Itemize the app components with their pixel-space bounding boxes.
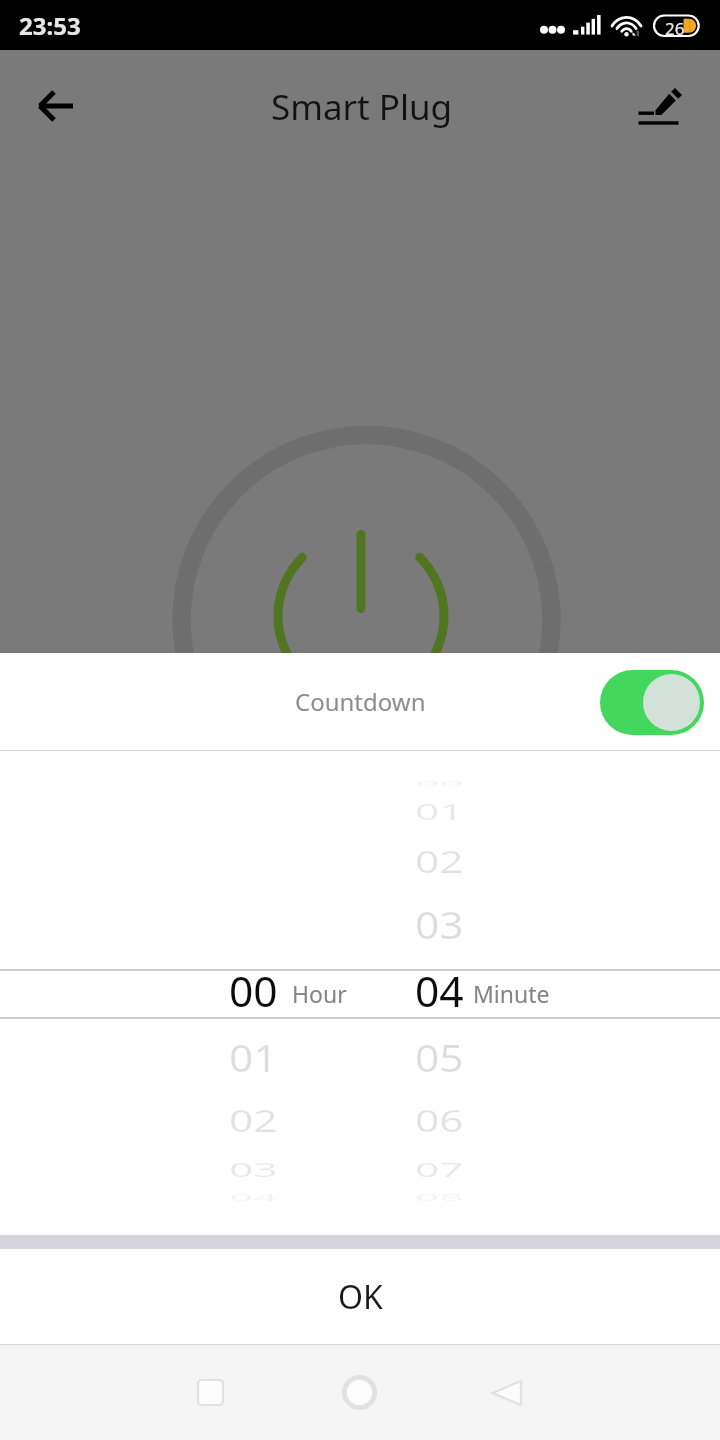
staticText: 02 bbox=[229, 1099, 278, 1141]
button[interactable]: Home bbox=[341, 1374, 378, 1411]
staticText: 06 bbox=[415, 1099, 464, 1141]
staticText: 02 bbox=[415, 841, 464, 883]
staticText: 04 bbox=[415, 962, 464, 1020]
staticText: Hour bbox=[292, 978, 347, 1009]
button[interactable]: Edit bbox=[621, 67, 701, 147]
staticText: 03 bbox=[229, 1155, 278, 1183]
staticText: 01 bbox=[415, 798, 464, 826]
staticText: 05 bbox=[415, 1030, 464, 1084]
staticText: 00 bbox=[229, 962, 278, 1020]
button[interactable]: Recents bbox=[192, 1374, 229, 1411]
staticText: 00 bbox=[415, 778, 464, 788]
staticText: 01 bbox=[229, 1030, 278, 1084]
staticText: 07 bbox=[415, 1155, 464, 1183]
staticText: OK bbox=[338, 1275, 383, 1319]
button[interactable]: Countdown bbox=[0, 653, 720, 750]
staticText: Minute bbox=[473, 978, 550, 1009]
button[interactable]: Back bbox=[16, 66, 96, 146]
button[interactable]: Back bbox=[488, 1374, 525, 1411]
staticText: 04 bbox=[229, 1192, 278, 1203]
button[interactable]: OK bbox=[0, 1249, 720, 1344]
staticText: Countdown bbox=[295, 685, 426, 718]
staticText: 08 bbox=[415, 1192, 464, 1203]
button[interactable]: 00 bbox=[0, 751, 720, 1235]
staticText: 03 bbox=[415, 899, 464, 951]
staticText: 26 bbox=[665, 17, 685, 40]
staticText: Smart Plug bbox=[271, 83, 453, 131]
staticText: 23:53 bbox=[19, 9, 81, 42]
button[interactable]: Countdown toggle bbox=[600, 670, 704, 735]
